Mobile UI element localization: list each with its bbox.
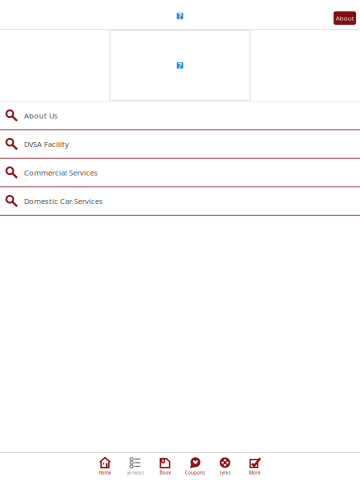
button[interactable]: Tyres xyxy=(210,453,240,479)
button[interactable]: Services xyxy=(120,453,150,479)
staticText: ? xyxy=(178,11,182,21)
staticText: Coupons xyxy=(185,470,205,476)
staticText: Services xyxy=(126,470,143,476)
button[interactable]: About Us xyxy=(0,102,360,130)
button[interactable]: About xyxy=(334,11,356,25)
button[interactable]: Book xyxy=(150,453,180,479)
button[interactable]: More xyxy=(240,453,270,479)
staticText: ? xyxy=(178,60,182,71)
staticText: More xyxy=(249,470,261,476)
button[interactable]: Domestic Car Services xyxy=(0,187,360,216)
button[interactable]: Home xyxy=(90,453,120,479)
staticText: Tyres xyxy=(219,470,230,476)
staticText: DVSA Facility xyxy=(24,139,69,149)
button[interactable]: DVSA Facility xyxy=(0,130,360,159)
staticText: Commercial Services xyxy=(24,167,98,178)
staticText: Book xyxy=(159,470,170,476)
button[interactable]: Commercial Services xyxy=(0,159,360,187)
staticText: Domestic Car Services xyxy=(24,196,103,206)
staticText: About xyxy=(336,14,354,22)
staticText: Home xyxy=(98,470,111,476)
button[interactable]: Coupons xyxy=(180,453,210,479)
staticText: About Us xyxy=(24,110,58,121)
